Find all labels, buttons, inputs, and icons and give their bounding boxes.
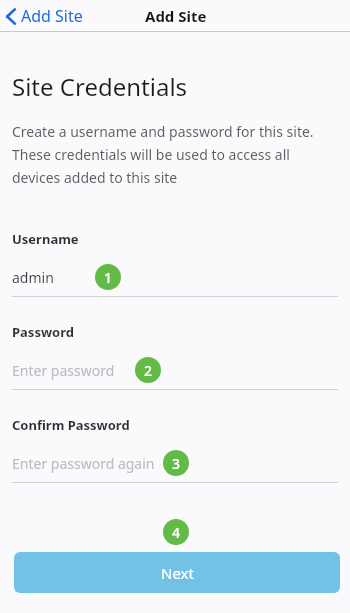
staticText: Password [12,323,74,341]
staticText: 2 [144,361,153,380]
staticText: 4 [172,523,181,542]
button[interactable]: Enter password again [12,450,338,476]
button[interactable]: Next [14,552,340,593]
button[interactable]: Enter password [12,357,338,383]
staticText: Create a username and password for this … [12,122,338,187]
staticText: 3 [172,454,181,473]
button[interactable]: admin [12,264,338,290]
staticText: admin [12,268,54,287]
staticText: Username [12,230,79,248]
staticText: Next [161,563,194,583]
staticText: Enter password [12,361,115,380]
staticText: Confirm Password [12,416,130,434]
button[interactable]: Back [0,1,91,31]
staticText: 1 [104,268,113,287]
staticText: Enter password again [12,454,155,473]
staticText: Add Site [145,6,207,26]
staticText: Site Credentials [12,70,188,103]
other: Back [6,8,16,25]
staticText: Add Site [21,5,83,27]
